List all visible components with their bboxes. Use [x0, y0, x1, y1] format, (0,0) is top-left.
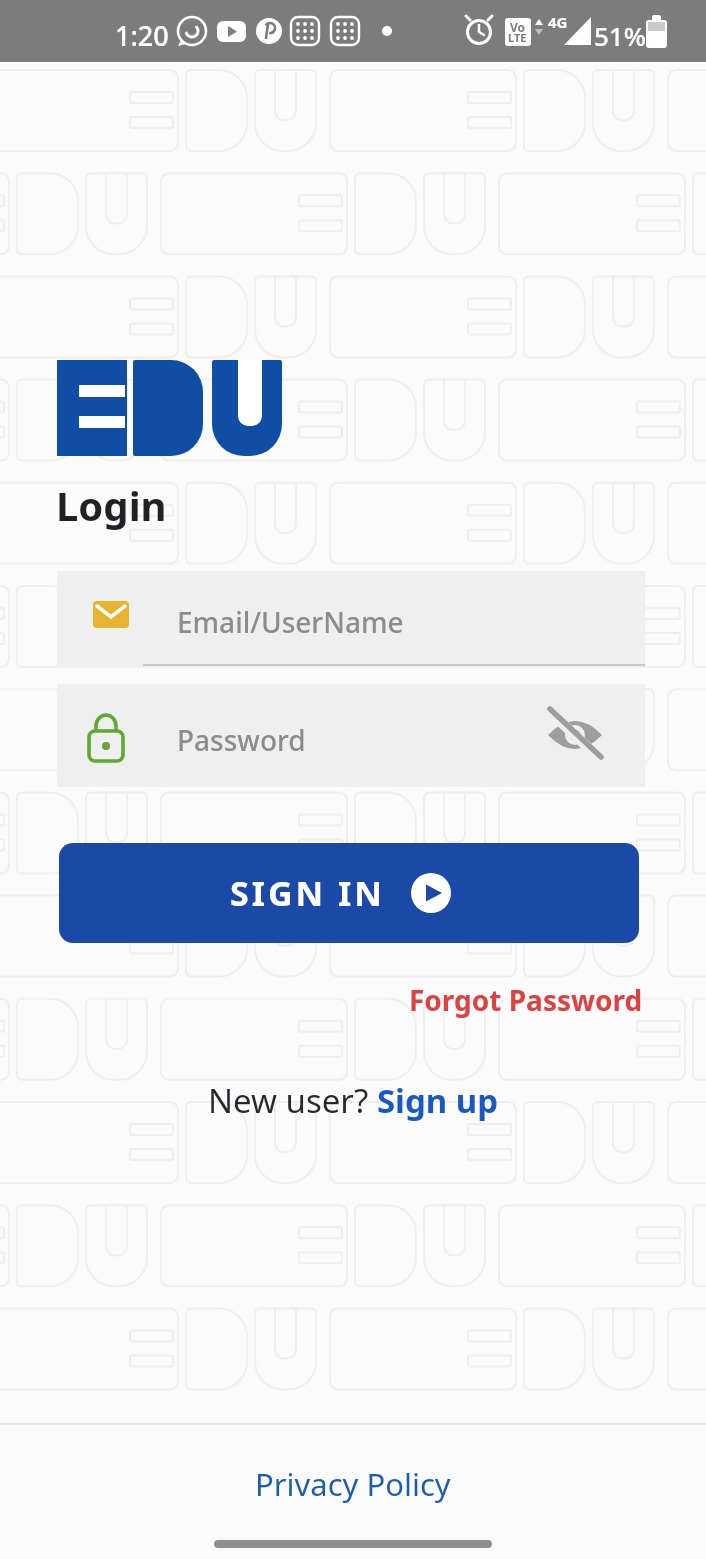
staticText: Vo [510, 19, 526, 35]
button[interactable]: SIGN IN [59, 843, 639, 943]
button[interactable]: Privacy Policy [255, 1463, 451, 1505]
button[interactable]: New user? Sign up [208, 1078, 499, 1123]
staticText: Password [177, 721, 306, 759]
staticText: 51% [594, 18, 646, 53]
staticText: LTE [508, 30, 527, 45]
button[interactable]: Forgot Password [409, 981, 643, 1019]
staticText: 4G [548, 12, 568, 32]
button[interactable]: Password [57, 684, 645, 787]
staticText: 1:20 [115, 17, 169, 54]
staticText: Email/UserName [177, 603, 404, 641]
button[interactable]: Email/UserName [57, 571, 645, 668]
button[interactable] [547, 708, 609, 766]
staticText: SIGN IN [230, 870, 385, 916]
staticText: Login [56, 478, 167, 532]
